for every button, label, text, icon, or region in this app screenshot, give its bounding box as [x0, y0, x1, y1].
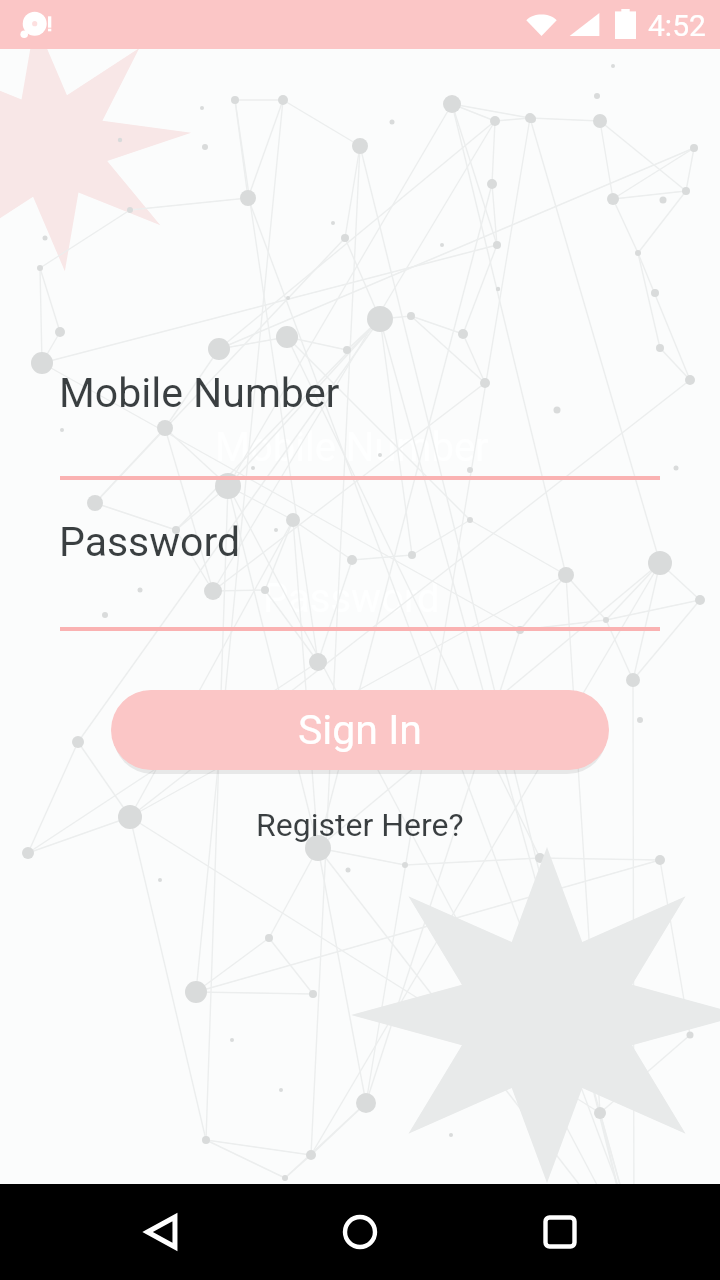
staticText: Register Here?: [256, 806, 464, 844]
button[interactable]: Register Here?: [244, 794, 476, 856]
staticText: Mobile Number: [215, 424, 489, 471]
button[interactable]: Back: [100, 1184, 220, 1280]
staticText: Sign In: [298, 706, 422, 754]
staticText: 4:52: [648, 8, 706, 43]
staticText: Password: [59, 518, 241, 566]
button[interactable]: Sign In: [111, 690, 609, 770]
staticText: Mobile Number: [59, 369, 340, 417]
button[interactable]: Recent apps: [500, 1184, 620, 1280]
staticText: Password: [263, 575, 440, 622]
button[interactable]: Home: [300, 1184, 420, 1280]
